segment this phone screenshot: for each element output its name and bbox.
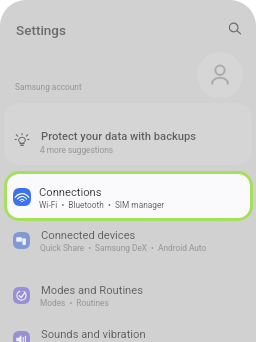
staticText: Samsung account <box>15 82 82 92</box>
staticText: Sounds and vibration <box>41 328 146 341</box>
button[interactable]: Modes and Routines <box>0 280 256 323</box>
staticText: Protect your data with backups <box>41 130 197 143</box>
staticText: Modes • Routines <box>40 298 109 308</box>
button[interactable]: Protect your data with backups <box>4 103 252 165</box>
staticText: 4 more suggestions <box>40 145 114 155</box>
staticText: Quick Share • Samsung DeX • Android Auto <box>40 243 207 253</box>
staticText: Modes and Routines <box>41 284 143 297</box>
staticText: Wi-Fi • Bluetooth • SIM manager <box>39 200 165 210</box>
staticText: Connections <box>39 186 102 199</box>
button[interactable]: Search <box>216 10 253 47</box>
button[interactable]: Connected devices <box>0 225 256 268</box>
button[interactable]: Samsung account <box>0 46 256 104</box>
staticText: Settings <box>16 22 66 38</box>
button[interactable]: Connections <box>4 171 253 221</box>
staticText: Connected devices <box>41 229 136 242</box>
button[interactable]: Sounds and vibration <box>0 324 256 342</box>
